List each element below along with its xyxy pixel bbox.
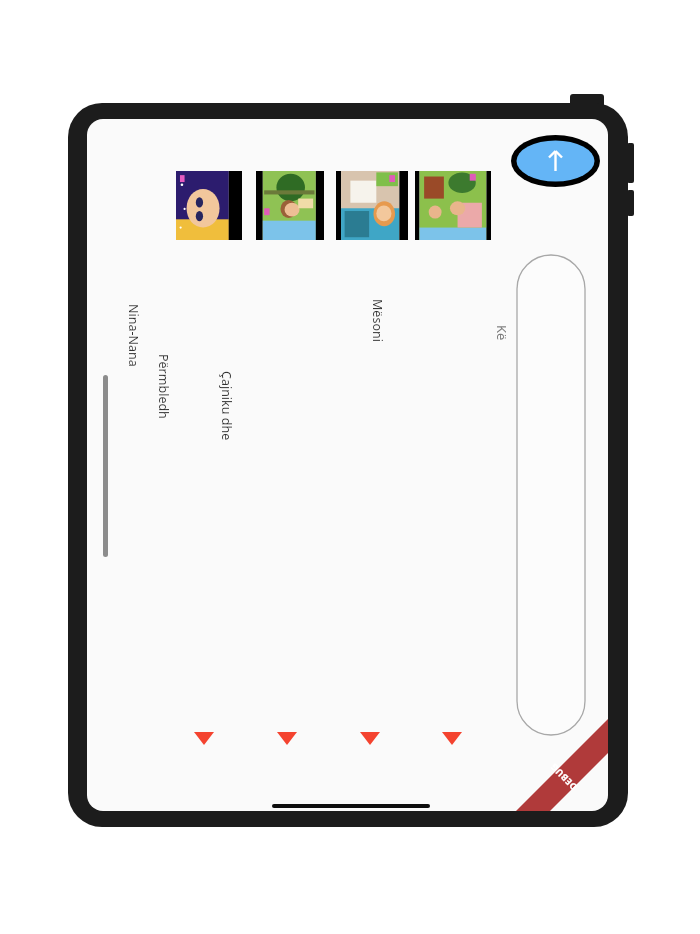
button[interactable]: Scroll to top (511, 135, 600, 187)
button[interactable]: Video thumbnail (336, 171, 408, 240)
staticText: Përmbledhje me këngë për fëmijë | Ga Ga (155, 354, 172, 422)
button[interactable]: Nina-Nana | Ninulla | Ga Ga (176, 252, 242, 422)
button[interactable]: Expand menu (194, 732, 214, 745)
button[interactable]: Çajniku dhe këngët më të mira për fëmijë… (336, 252, 408, 562)
button[interactable]: Expand menu (360, 732, 380, 745)
staticText: Kërko video... (493, 325, 511, 345)
staticText: Çajniku dhe këngët më të mira për fëmijë… (218, 371, 235, 443)
button[interactable]: Video thumbnail (256, 171, 324, 240)
staticText: Nina-Nana | Ninulla | Ga Ga (125, 304, 142, 370)
button[interactable]: Kërko video... (517, 255, 585, 735)
button[interactable]: Expand menu (442, 732, 462, 745)
button[interactable]: Video thumbnail (415, 171, 491, 240)
staticText: DEBUG (547, 761, 579, 793)
button[interactable]: Expand menu (277, 732, 297, 745)
staticText: Mësoni numrat | Ga Ga (369, 299, 386, 375)
button[interactable]: Video thumbnail (176, 171, 242, 240)
